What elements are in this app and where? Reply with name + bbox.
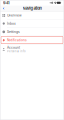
button[interactable]: Notifications: [0, 36, 64, 44]
staticText: Navigation: [22, 6, 41, 11]
staticText: Notifications: [7, 38, 27, 42]
staticText: Settings: [7, 30, 20, 34]
staticText: Inbox: [7, 22, 16, 26]
button[interactable]: Inbox: [0, 20, 64, 28]
button[interactable]: Overview: [0, 11, 64, 19]
staticText: 9:41: [3, 0, 10, 5]
button[interactable]: Back: [2, 6, 5, 11]
staticText: Personal info: [7, 50, 26, 53]
button[interactable]: Account: [0, 44, 64, 54]
staticText: Overview: [7, 13, 22, 17]
staticText: Account: [7, 46, 20, 50]
button[interactable]: Settings: [0, 28, 64, 36]
